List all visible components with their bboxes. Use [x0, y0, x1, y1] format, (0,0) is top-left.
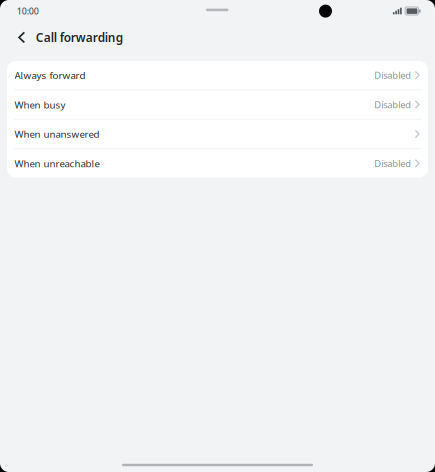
button[interactable]: Back — [8, 22, 36, 53]
button[interactable]: Always forward — [7, 61, 428, 89]
button[interactable]: When unanswered — [7, 120, 428, 148]
staticText: When unanswered — [15, 127, 100, 141]
staticText: Always forward — [15, 69, 86, 82]
staticText: 10:00 — [17, 5, 39, 17]
staticText: When busy — [15, 98, 66, 111]
staticText: Call forwarding — [36, 29, 123, 45]
staticText: Disabled — [374, 69, 411, 81]
button[interactable]: When unreachable — [7, 149, 428, 178]
staticText: When unreachable — [15, 157, 100, 170]
button[interactable]: When busy — [7, 90, 428, 119]
staticText: Disabled — [374, 98, 411, 111]
staticText: Disabled — [374, 157, 411, 170]
